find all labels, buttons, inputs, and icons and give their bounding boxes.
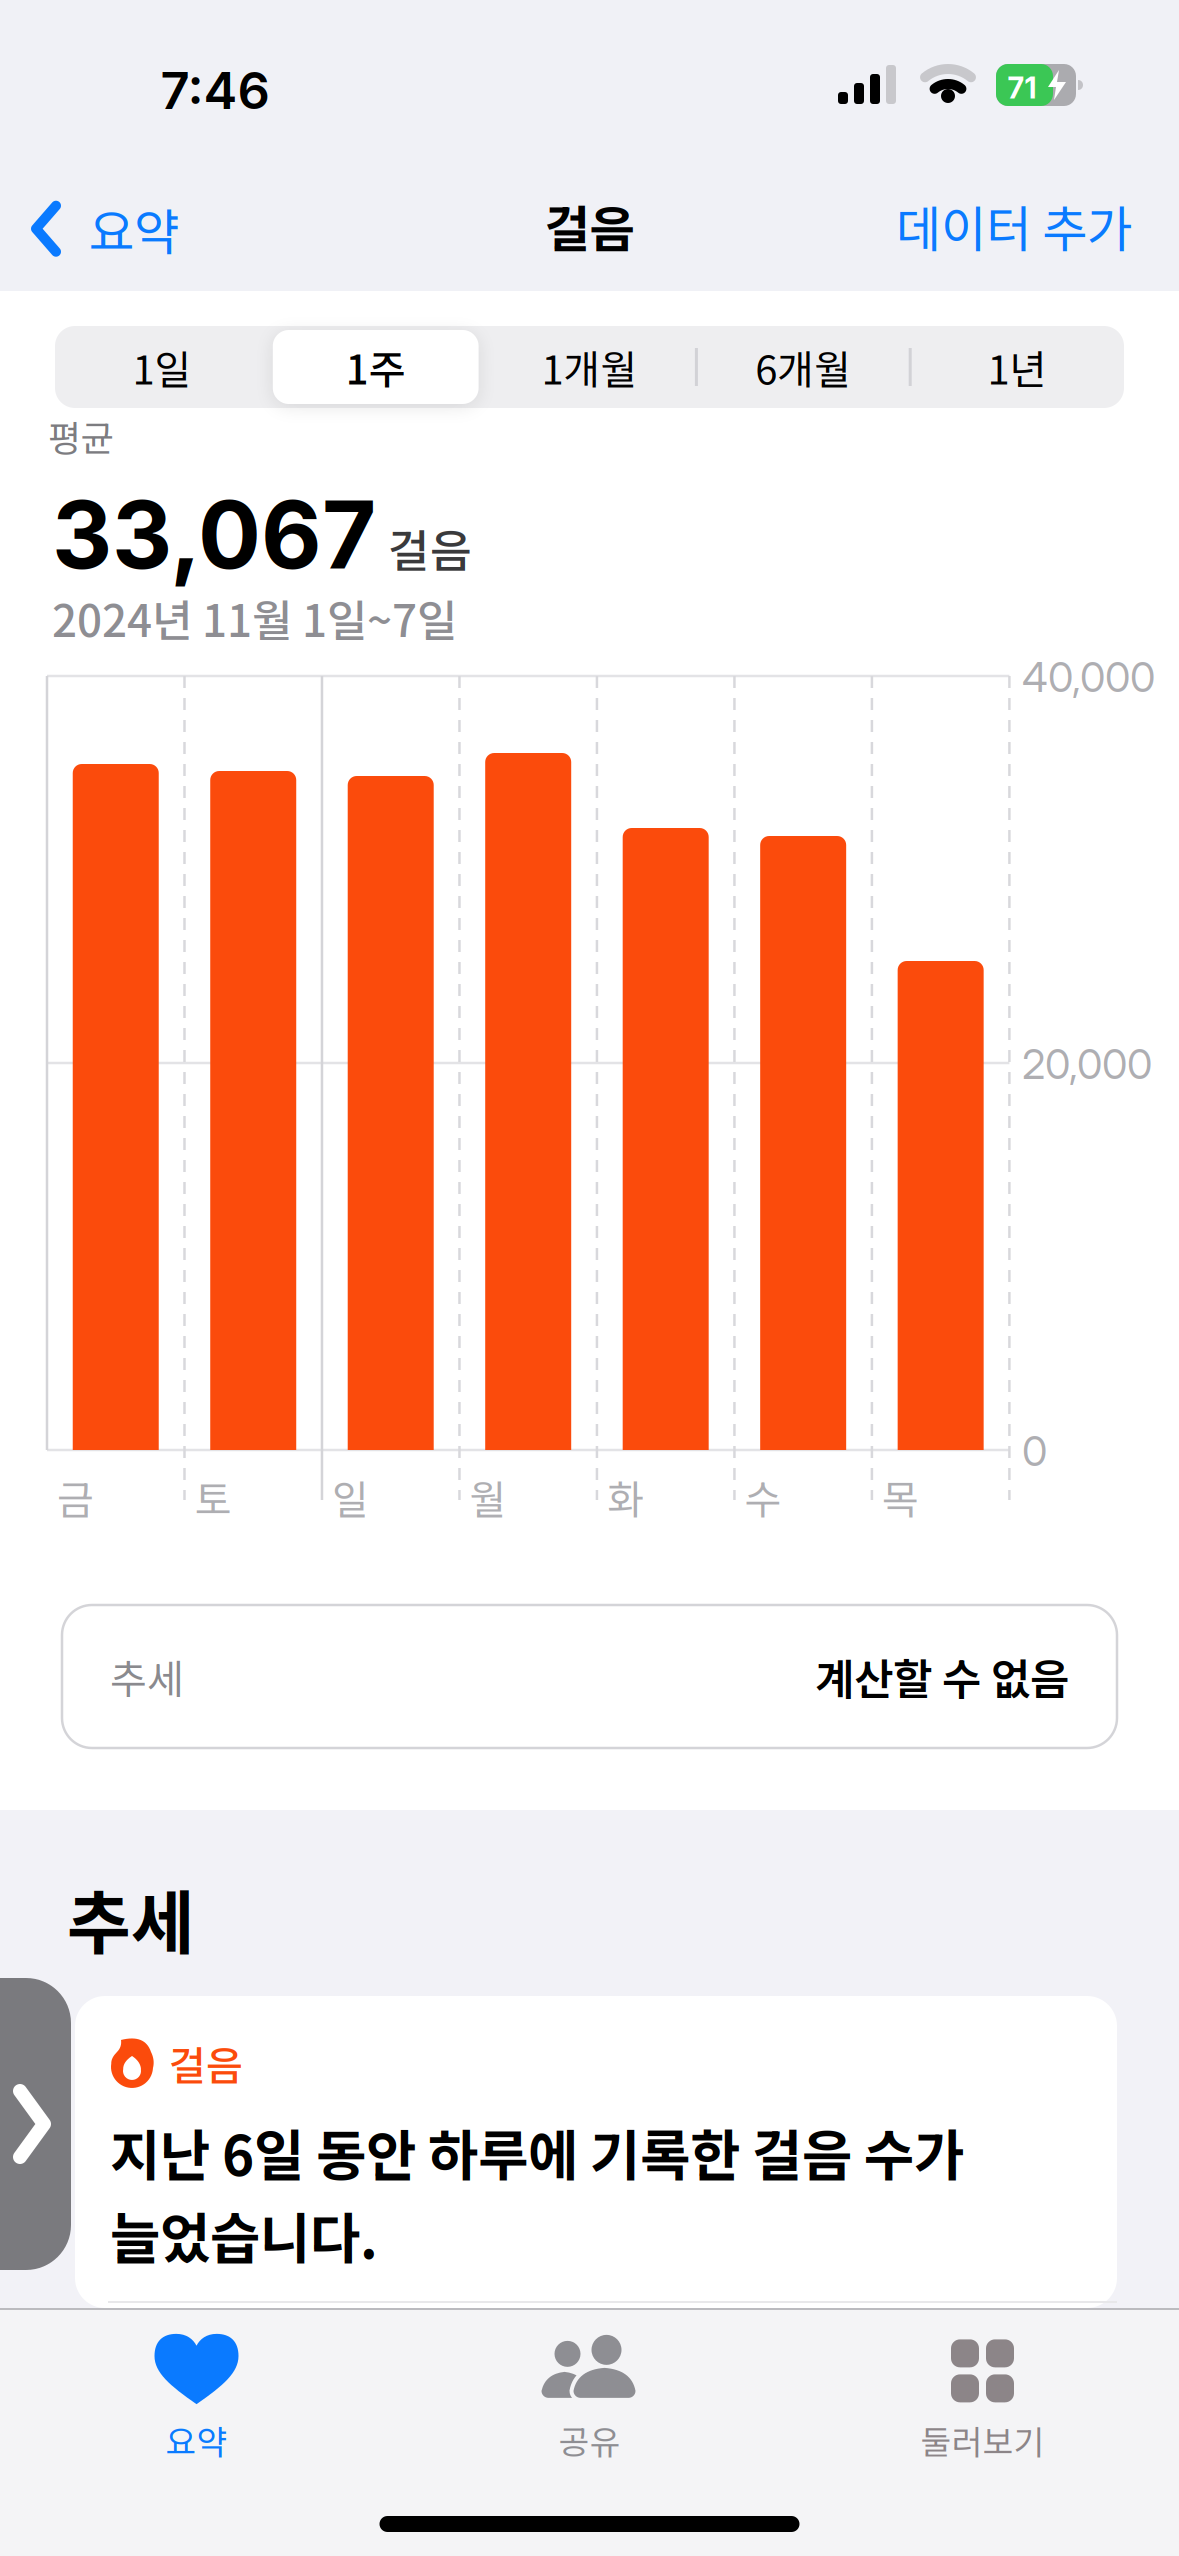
staticText: 계산할 수 없음	[815, 1646, 1069, 1707]
staticText: 걸음	[544, 190, 634, 261]
staticText: 33,067	[52, 478, 376, 591]
button[interactable]: 걸음	[75, 1996, 1117, 2308]
staticText: 1일	[132, 338, 191, 396]
button[interactable]: 공유	[429, 2324, 749, 2474]
staticText: 추세	[110, 1647, 184, 1705]
button[interactable]: 요약	[36, 2324, 356, 2474]
staticText: 2024년 11월 1일~7일	[52, 586, 457, 650]
staticText: 71	[1007, 70, 1036, 105]
staticText: 걸음	[388, 515, 472, 581]
staticText: 월	[469, 1468, 506, 1526]
staticText: 토	[194, 1468, 231, 1526]
button[interactable]: 추세	[62, 1605, 1117, 1748]
staticText: 7:46	[160, 60, 269, 121]
button[interactable]: 1개월	[483, 326, 696, 408]
staticText: 공유	[558, 2416, 620, 2464]
button[interactable]: 1년	[910, 326, 1124, 408]
staticText: 0	[1022, 1426, 1047, 1476]
button[interactable]: 데이터 추가	[896, 190, 1132, 261]
button[interactable]: 다음 카드	[0, 1978, 71, 2270]
staticText: 화	[607, 1468, 644, 1526]
staticText: 수	[744, 1468, 781, 1526]
staticText: 요약	[165, 2416, 227, 2464]
staticText: 6개월	[755, 338, 851, 396]
staticText: 일	[332, 1468, 369, 1526]
staticText: 데이터 추가	[896, 190, 1132, 261]
button[interactable]: 1주	[269, 326, 483, 408]
staticText: 1년	[988, 338, 1047, 396]
button[interactable]: 6개월	[696, 326, 910, 408]
staticText: 요약	[89, 193, 179, 264]
staticText: 금	[57, 1468, 94, 1526]
staticText: 40,000	[1022, 652, 1155, 702]
staticText: 추세	[67, 1868, 195, 1968]
button[interactable]: 요약	[31, 193, 179, 264]
button[interactable]: 둘러보기	[822, 2324, 1142, 2474]
staticText: 둘러보기	[920, 2416, 1044, 2464]
staticText: 1개월	[541, 338, 637, 396]
staticText: 목	[882, 1468, 919, 1526]
staticText: 지난 6일 동안 하루에 기록한 걸음 수가 늘었습니다.	[110, 2112, 964, 2274]
staticText: 평균	[48, 410, 114, 462]
button[interactable]: 1일	[55, 326, 269, 408]
staticText: 1주	[346, 338, 406, 396]
staticText: 20,000	[1022, 1039, 1152, 1089]
staticText: 걸음	[169, 2034, 243, 2092]
